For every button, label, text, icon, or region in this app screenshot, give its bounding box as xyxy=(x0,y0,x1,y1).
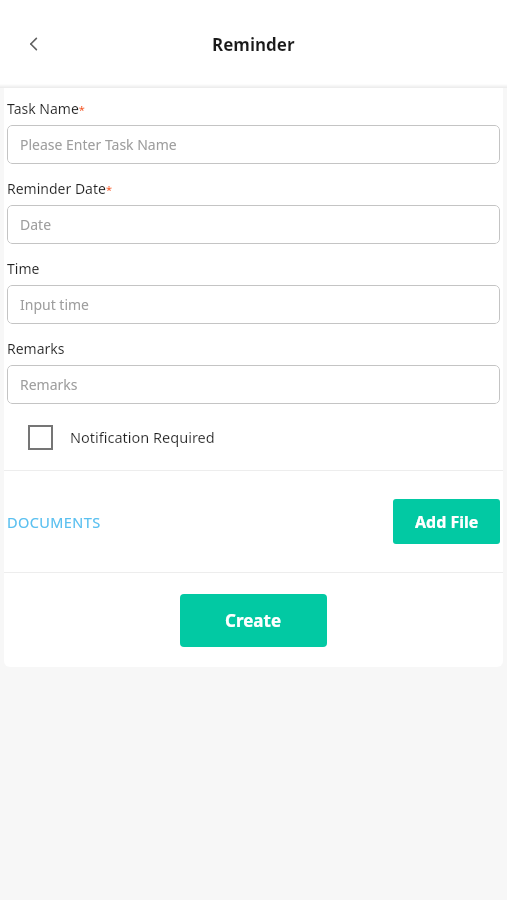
button[interactable]: Add File xyxy=(393,499,500,544)
button[interactable]: Date xyxy=(7,205,500,244)
staticText: Reminder xyxy=(212,33,295,56)
staticText: Please Enter Task Name xyxy=(20,135,177,154)
staticText: Date xyxy=(20,215,52,234)
staticText: Remarks xyxy=(20,375,78,394)
button[interactable]: Please Enter Task Name xyxy=(7,125,500,164)
button[interactable]: Create xyxy=(180,594,327,647)
button[interactable]: DOCUMENTS xyxy=(7,512,101,532)
button[interactable]: Remarks xyxy=(7,365,500,404)
staticText: Input time xyxy=(20,295,90,314)
staticText: Remarks xyxy=(7,339,65,358)
staticText: Reminder Date* xyxy=(7,179,112,198)
staticText: Create xyxy=(225,609,282,632)
staticText: Task Name* xyxy=(7,99,85,118)
staticText: Notification Required xyxy=(70,427,215,447)
button[interactable]: Notification Required xyxy=(4,404,503,470)
button[interactable]: Back xyxy=(12,22,56,66)
staticText: Time xyxy=(7,259,40,278)
staticText: Add File xyxy=(415,511,479,533)
button[interactable]: Input time xyxy=(7,285,500,324)
